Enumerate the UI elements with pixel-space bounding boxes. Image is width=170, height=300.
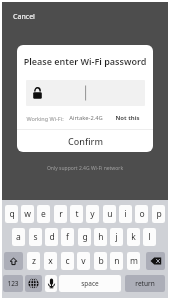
button[interactable]: r [54,205,67,223]
button[interactable]: return [125,275,165,292]
staticText: e [41,208,46,220]
button[interactable]: o [135,205,148,223]
button[interactable]: space [59,275,121,292]
staticText: y [90,208,95,220]
staticText: h [98,231,104,243]
staticText: x [48,255,53,267]
staticText: n [114,255,120,267]
button[interactable]: w [21,205,34,223]
staticText: g [82,231,88,243]
button[interactable]: Voice input [45,275,57,292]
staticText: z [32,255,36,267]
button[interactable]: g [78,228,91,246]
staticText: space [81,279,99,288]
staticText: u [107,208,113,220]
button[interactable]: 123 [3,275,23,292]
staticText: Only support 2.4G Wi-Fi network [0,165,170,172]
button[interactable]: Change keyboard [25,275,42,292]
staticText: p [156,208,162,220]
button[interactable]: u [103,205,116,223]
staticText: o [139,208,145,220]
staticText: return [135,279,155,288]
button[interactable]: j [110,228,123,246]
button[interactable]: v [77,252,90,270]
button[interactable]: i [119,205,132,223]
button[interactable]: f [61,228,74,246]
button[interactable]: h [94,228,107,246]
staticText: q [9,208,15,220]
button[interactable]: d [45,228,58,246]
button[interactable]: z [27,252,40,270]
button[interactable]: t [70,205,83,223]
staticText: Airtake-2.4G [69,114,103,122]
staticText: r [59,208,63,220]
button[interactable]: q [5,205,18,223]
button[interactable]: m [127,252,140,270]
button[interactable]: l [143,228,156,246]
button[interactable]: Cancel [8,9,40,25]
button[interactable]: s [29,228,42,246]
button[interactable]: Not this [114,112,141,124]
button[interactable]: c [61,252,74,270]
staticText: Cancel [13,12,35,22]
button[interactable] [26,80,145,106]
button[interactable]: k [127,228,140,246]
button[interactable]: b [94,252,107,270]
staticText: b [98,255,104,267]
button[interactable]: a [12,228,25,246]
button[interactable]: x [44,252,57,270]
staticText: w [24,208,31,220]
staticText: m [130,255,138,267]
staticText: c [65,255,70,267]
staticText: k [131,231,136,243]
button[interactable]: Backspace [146,252,165,270]
staticText: l [148,231,151,243]
staticText: Not this [115,114,140,122]
staticText: Confirm [68,135,103,147]
staticText: d [49,231,55,243]
button[interactable]: n [110,252,123,270]
staticText: i [124,208,127,220]
staticText: Please enter Wi-Fi password [17,55,153,67]
staticText: a [16,231,21,243]
staticText: 123 [7,279,19,288]
staticText: s [33,231,38,243]
button[interactable]: p [152,205,165,223]
button[interactable]: Shift [4,252,23,270]
staticText: t [75,208,79,220]
staticText: v [81,255,86,267]
staticText: j [115,231,118,243]
staticText: Working Wi-Fi: [26,115,64,122]
button[interactable]: y [86,205,99,223]
button[interactable]: Confirm [17,130,153,152]
staticText: f [66,231,69,243]
button[interactable]: e [37,205,50,223]
